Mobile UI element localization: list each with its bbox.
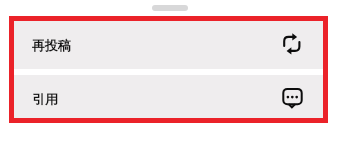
button[interactable]: 引用 [14,75,323,118]
other: Repost [279,32,303,56]
other: Quote [279,86,303,110]
staticText: 引用 [32,91,58,107]
staticText: 再投稿 [32,37,71,53]
button[interactable]: 再投稿 [14,21,323,69]
